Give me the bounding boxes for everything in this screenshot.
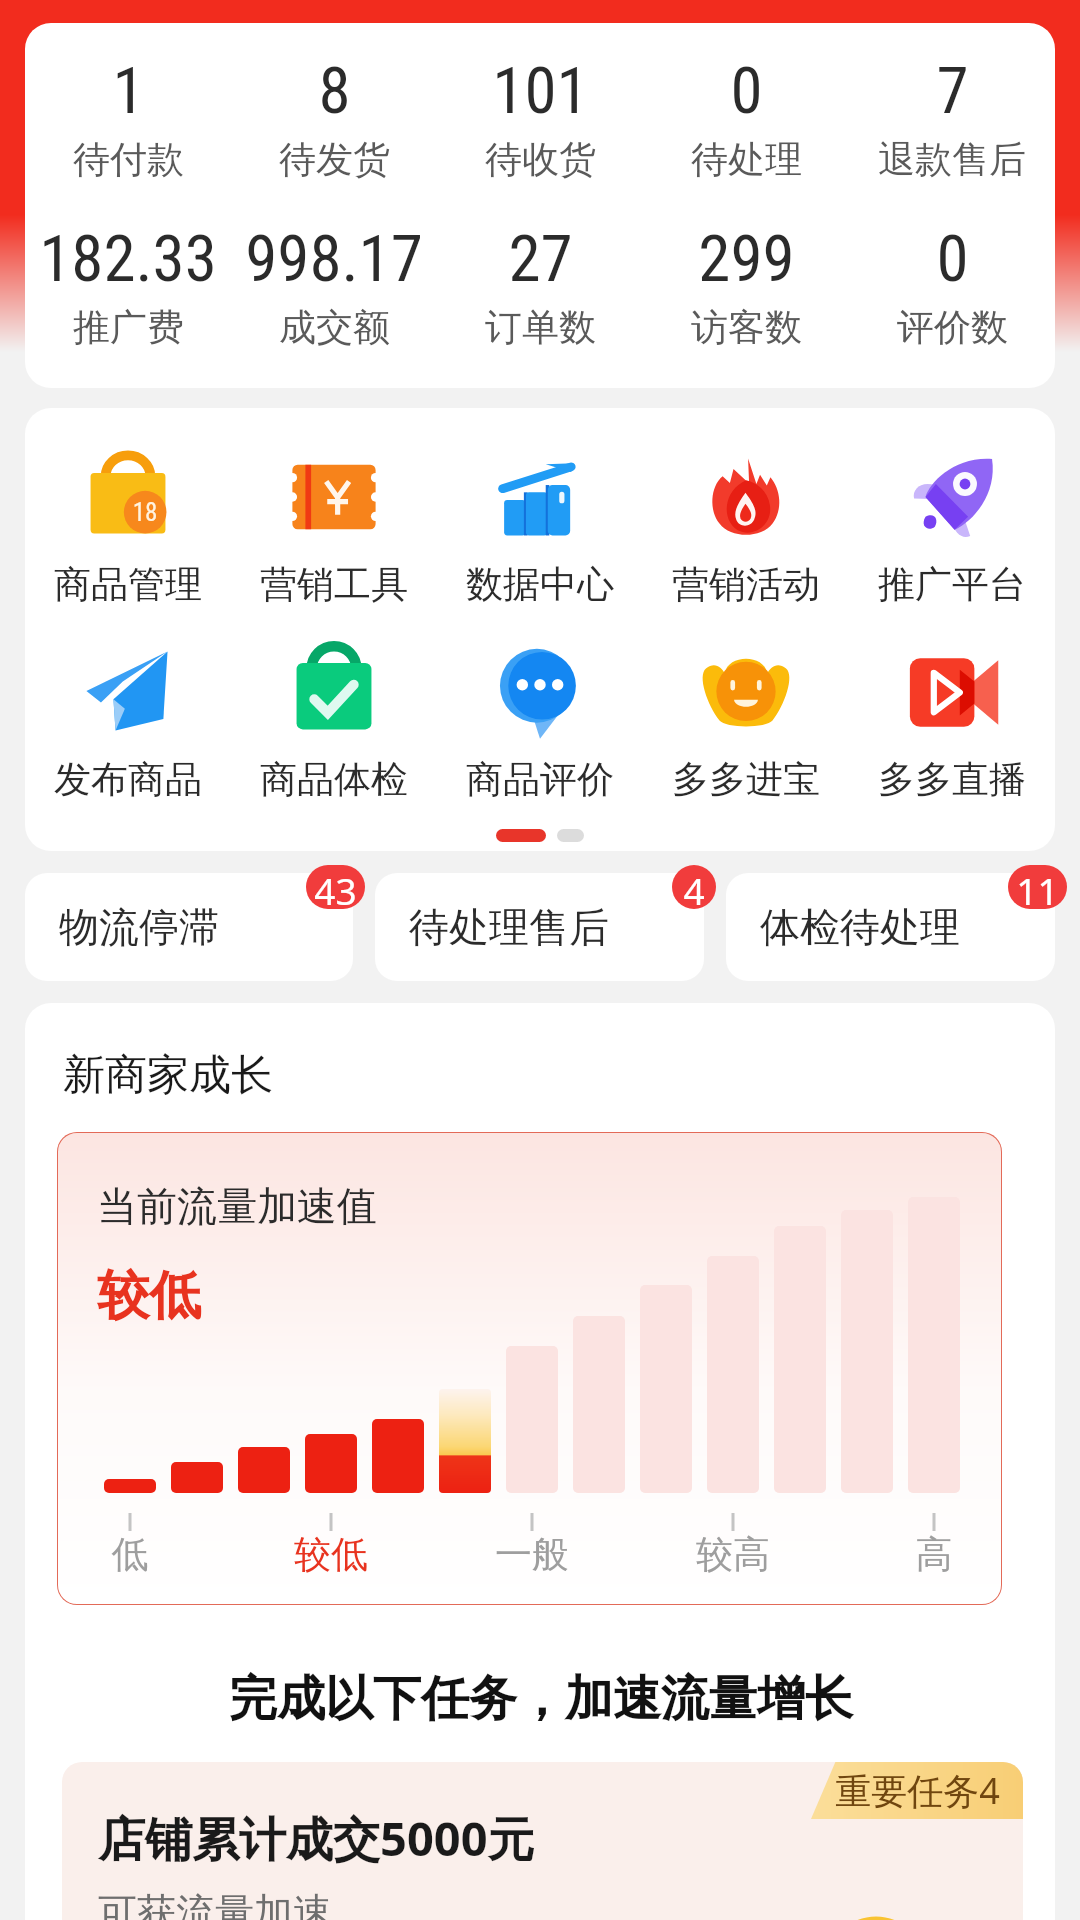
button[interactable]: 营销活动 xyxy=(643,445,849,608)
button[interactable]: 7 xyxy=(849,53,1055,183)
button[interactable]: 营销工具 xyxy=(231,445,437,608)
button[interactable]: 8 xyxy=(231,53,437,183)
button[interactable]: 998.17 xyxy=(231,221,437,351)
staticText: 27 xyxy=(508,221,573,297)
button[interactable]: 商品体检 xyxy=(231,640,437,803)
other: 发布商品 xyxy=(76,640,180,744)
staticText: 1 xyxy=(112,53,145,129)
button[interactable]: 多多进宝 xyxy=(643,640,849,803)
other: 商品管理 xyxy=(76,445,180,549)
button[interactable]: 商品评价 xyxy=(437,640,643,803)
staticText: 多多直播 xyxy=(878,756,1026,803)
button[interactable]: 物流停滞 xyxy=(25,873,353,981)
staticText: 体检待处理 xyxy=(760,902,960,952)
staticText: 4 xyxy=(683,865,705,909)
staticText: 11 xyxy=(1016,865,1059,909)
staticText: 待处理售后 xyxy=(409,902,609,952)
staticText: 商品评价 xyxy=(466,756,614,803)
staticText: 推广费 xyxy=(73,304,184,351)
button[interactable]: 299 xyxy=(643,221,849,351)
other: 营销工具 xyxy=(282,445,386,549)
staticText: 退款售后 xyxy=(878,136,1026,183)
button[interactable]: 推广平台 xyxy=(849,445,1055,608)
other: 多多进宝 xyxy=(694,640,798,744)
staticText: 待收货 xyxy=(485,136,596,183)
button[interactable]: 第1页 xyxy=(496,829,546,842)
other: 商品评价 xyxy=(488,640,592,744)
button[interactable]: 27 xyxy=(437,221,643,351)
staticText: 待处理 xyxy=(691,136,802,183)
staticText: 发布商品 xyxy=(54,756,202,803)
button[interactable]: 数据中心 xyxy=(437,445,643,608)
button[interactable]: 1 xyxy=(25,53,231,183)
staticText: 推广平台 xyxy=(878,561,1026,608)
button[interactable]: 体检待处理 xyxy=(726,873,1055,981)
staticText: 998.17 xyxy=(245,221,423,297)
staticText: 店铺累计成交5000元 xyxy=(98,1806,535,1870)
other: 数据中心 xyxy=(488,445,592,549)
other: 多多直播 xyxy=(900,640,1004,744)
other: 营销活动 xyxy=(694,445,798,549)
button[interactable]: 0 xyxy=(643,53,849,183)
staticText: 可获流量加速 xyxy=(98,1888,332,1920)
staticText: 物流停滞 xyxy=(59,902,219,952)
staticText: 101 xyxy=(492,53,589,129)
staticText: 较低 xyxy=(97,1263,201,1329)
staticText: 订单数 xyxy=(485,304,596,351)
button[interactable]: 0 xyxy=(849,221,1055,351)
staticText: 重要任务4 xyxy=(835,1766,1000,1815)
staticText: 数据中心 xyxy=(466,561,614,608)
button[interactable]: 商品管理 xyxy=(25,445,231,608)
staticText: 新商家成长 xyxy=(63,1049,273,1102)
staticText: 营销活动 xyxy=(672,561,820,608)
staticText: 8 xyxy=(318,53,351,129)
other: 商品体检 xyxy=(282,640,386,744)
staticText: 43 xyxy=(314,865,357,909)
staticText: 待发货 xyxy=(279,136,390,183)
staticText: 当前流量加速值 xyxy=(97,1181,377,1231)
staticText: 待付款 xyxy=(73,136,184,183)
button[interactable]: 182.33 xyxy=(25,221,231,351)
staticText: 商品体检 xyxy=(260,756,408,803)
staticText: 评价数 xyxy=(897,304,1008,351)
button[interactable]: 待处理售后 xyxy=(375,873,704,981)
staticText: 完成以下任务，加速流量增长 xyxy=(229,1669,853,1729)
staticText: 0 xyxy=(936,221,969,297)
staticText: 访客数 xyxy=(691,304,802,351)
button[interactable]: 发布商品 xyxy=(25,640,231,803)
staticText: 299 xyxy=(698,221,795,297)
staticText: 0 xyxy=(730,53,763,129)
staticText: 多多进宝 xyxy=(672,756,820,803)
staticText: 营销工具 xyxy=(260,561,408,608)
staticText: 7 xyxy=(936,53,969,129)
staticText: 成交额 xyxy=(279,304,390,351)
button[interactable]: 重要任务4 xyxy=(62,1762,1023,1920)
button[interactable]: 多多直播 xyxy=(849,640,1055,803)
other: 推广平台 xyxy=(900,445,1004,549)
button[interactable]: 第2页 xyxy=(557,829,584,842)
button[interactable]: 101 xyxy=(437,53,643,183)
staticText: 182.33 xyxy=(39,221,217,297)
staticText: 商品管理 xyxy=(54,561,202,608)
